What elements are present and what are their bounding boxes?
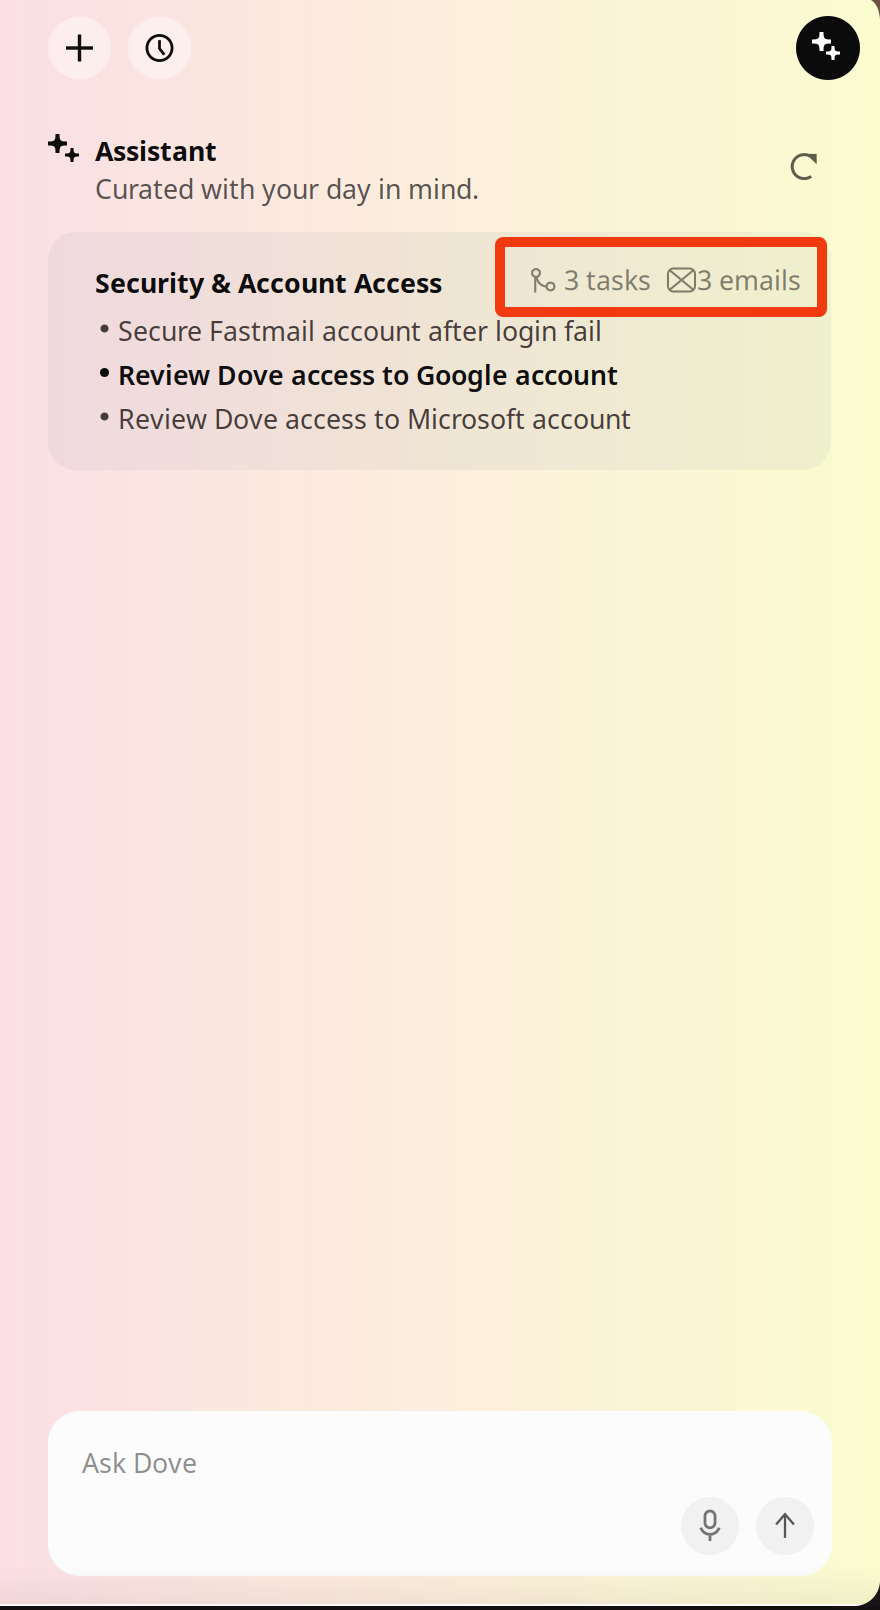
staticText: Security & Account Access — [95, 265, 442, 300]
staticText: Secure Fastmail account after login fail — [118, 313, 602, 348]
button[interactable]: Refresh — [782, 142, 830, 190]
button[interactable]: Voice input — [681, 1497, 739, 1555]
button[interactable]: Send — [756, 1497, 814, 1555]
staticText: 3 tasks — [564, 262, 651, 298]
button[interactable]: Assistant — [796, 16, 860, 80]
staticText: Assistant — [95, 133, 217, 168]
staticText: Review Dove access to Microsoft account — [118, 401, 631, 436]
staticText: Review Dove access to Google account — [118, 357, 618, 392]
button[interactable]: New chat — [48, 16, 111, 79]
button[interactable]: History — [128, 16, 191, 79]
staticText: 3 emails — [697, 262, 801, 298]
staticText: Ask Dove — [82, 1445, 197, 1480]
staticText: Curated with your day in mind. — [95, 171, 479, 206]
